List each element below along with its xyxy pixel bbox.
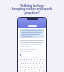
- button[interactable]: Key: [32, 62, 35, 65]
- button[interactable]: Key: [39, 58, 42, 61]
- button[interactable]: Key: [30, 58, 33, 61]
- button[interactable]: Key: [36, 66, 39, 69]
- button[interactable]: Key: [26, 62, 29, 65]
- button[interactable]: Key: [19, 66, 21, 69]
- button[interactable]: [21, 30, 43, 37]
- button[interactable]: Key: [25, 58, 27, 61]
- button[interactable]: Key: [36, 58, 39, 61]
- button[interactable]: Key: [42, 66, 45, 69]
- button[interactable]: Key: [41, 62, 44, 65]
- button[interactable]: Key: [24, 62, 26, 65]
- button[interactable]: Key: [42, 58, 45, 61]
- button[interactable]: Key: [29, 62, 32, 65]
- button[interactable]: Key: [38, 70, 41, 71]
- button[interactable]: Key: [21, 58, 23, 61]
- button[interactable]: Key: [27, 66, 30, 69]
- button[interactable]: Key: [19, 70, 22, 71]
- button[interactable]: Key: [23, 58, 25, 61]
- button[interactable]: Phone preview: [17, 17, 47, 72]
- button[interactable]: Key: [19, 58, 21, 61]
- button[interactable]: Key: [42, 70, 45, 71]
- button[interactable]: Key: [38, 62, 41, 65]
- button[interactable]: Key: [21, 66, 24, 69]
- button[interactable]: Key: [24, 66, 27, 69]
- button[interactable]: Key: [39, 66, 42, 69]
- button[interactable]: Key: [33, 58, 36, 61]
- button[interactable]: Key: [20, 62, 22, 65]
- button[interactable]: Key: [27, 58, 30, 61]
- button[interactable]: Search: [28, 25, 37, 27]
- button[interactable]: Key: [22, 62, 24, 65]
- staticText: Talking before keeping notes will work p…: [4, 3, 60, 15]
- button[interactable]: Key: [23, 70, 26, 71]
- button[interactable]: Key: [33, 66, 36, 69]
- button[interactable]: Key: [35, 62, 38, 65]
- button[interactable]: Talking before keeping notes will work p…: [4, 3, 60, 15]
- button[interactable]: Key: [30, 66, 33, 69]
